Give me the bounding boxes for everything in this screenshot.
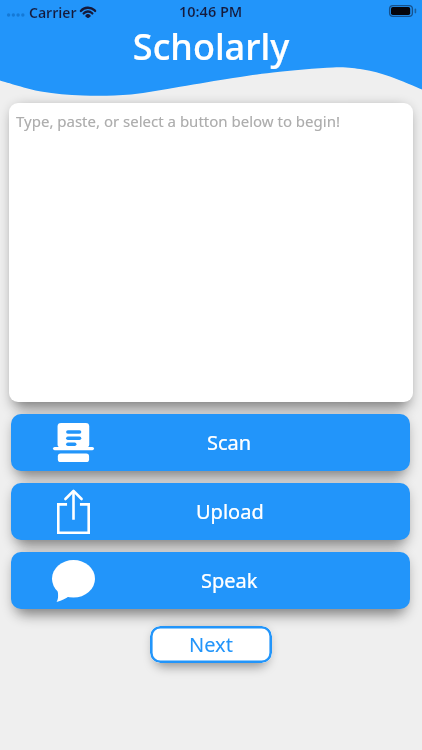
staticText: Carrier bbox=[29, 3, 77, 22]
staticText: Scholarly bbox=[0, 22, 422, 71]
other: Speak bbox=[52, 560, 95, 602]
staticText: Type, paste, or select a button below to… bbox=[16, 111, 340, 131]
other: Scan document bbox=[53, 423, 94, 462]
staticText: Scan bbox=[207, 429, 252, 456]
other: Upload bbox=[57, 490, 90, 534]
button[interactable]: Scan document bbox=[11, 414, 410, 471]
staticText: Next bbox=[189, 631, 233, 658]
button[interactable]: Speak bbox=[11, 552, 410, 609]
staticText: Upload bbox=[196, 498, 264, 525]
button[interactable]: Next bbox=[150, 626, 272, 663]
button[interactable]: Upload bbox=[11, 483, 410, 540]
staticText: Speak bbox=[201, 567, 258, 594]
button[interactable]: Type, paste, or select a button below to… bbox=[9, 103, 413, 402]
staticText: 10:46 PM bbox=[179, 1, 243, 21]
